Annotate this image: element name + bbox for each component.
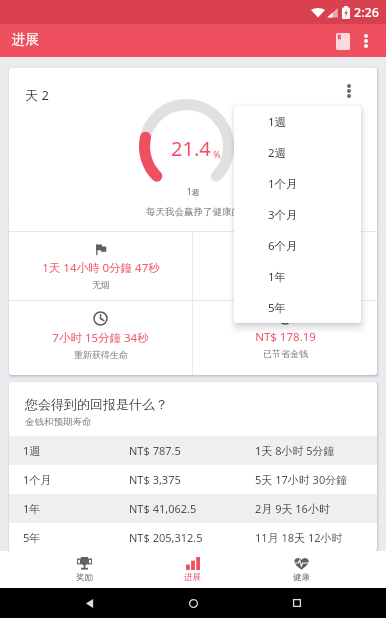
button[interactable]: Recents (282, 588, 312, 618)
staticText: 避免吸烟 (267, 279, 303, 290)
button[interactable]: 健康 (247, 551, 356, 588)
staticText: 1天 8小时 5分鐘 (255, 443, 377, 458)
staticText: 1年 (23, 501, 129, 516)
staticText: 7小时 15分鐘 34秒 (52, 330, 149, 346)
staticText: 每天我会赢挣了健康的 (146, 206, 241, 218)
button[interactable]: Chart options (331, 73, 367, 109)
staticText: 6个月 (268, 238, 298, 254)
button[interactable]: 6个月 (234, 230, 361, 261)
button[interactable]: 5年 (234, 292, 361, 323)
staticText: 2:26 (354, 4, 379, 21)
staticText: 5天 17小时 30分鐘 (255, 472, 377, 487)
staticText: 1个月 (23, 472, 129, 487)
button[interactable]: 16.5 (193, 232, 377, 300)
button[interactable]: 7小时 15分鐘 34秒 (9, 301, 192, 375)
staticText: 1週 (268, 114, 287, 130)
staticText: 已节省金钱 (263, 348, 308, 359)
staticText: 2週 (268, 145, 287, 161)
button[interactable]: 5年 (9, 523, 377, 551)
button[interactable]: NT$ 178.19 (193, 301, 377, 375)
staticText: 金钱和预期寿命 (25, 416, 92, 428)
staticText: NT$ 787.5 (129, 443, 255, 458)
staticText: 1年 (268, 269, 287, 285)
button[interactable]: More options (358, 25, 386, 57)
button[interactable]: 1年 (234, 261, 361, 292)
staticText: 您会得到的回报是什么？ (25, 396, 168, 412)
staticText: 1个月 (268, 176, 298, 192)
button[interactable]: 1週 (234, 106, 361, 137)
staticText: 1週 (23, 443, 129, 458)
staticText: 3个月 (268, 207, 298, 223)
staticText: NT$ 205,312.5 (129, 530, 255, 545)
button[interactable]: Back (74, 588, 104, 618)
staticText: 5年 (268, 300, 287, 316)
staticText: 21.4 (171, 135, 211, 162)
button[interactable]: 奖励 (30, 551, 138, 588)
staticText: 2月 9天 16小时 (255, 501, 377, 516)
button[interactable]: 1週 (9, 436, 377, 465)
staticText: 重新获得生命 (74, 349, 128, 360)
button[interactable]: 1天 14小時 0分鐘 47秒 (9, 232, 192, 300)
staticText: NT$ 178.19 (255, 329, 316, 345)
button[interactable]: Home (178, 588, 208, 618)
button[interactable]: 3个月 (234, 199, 361, 230)
staticText: NT$ 3,375 (129, 472, 255, 487)
staticText: 天 2 (25, 86, 49, 104)
button[interactable]: 1年 (9, 494, 377, 523)
staticText: 健康 (293, 572, 310, 583)
staticText: 无烟 (92, 279, 110, 290)
button[interactable]: 1个月 (234, 168, 361, 199)
button[interactable]: 1个月 (9, 465, 377, 494)
staticText: 1週 (187, 186, 200, 197)
staticText: 11月 18天 12小时 (255, 530, 377, 545)
button[interactable]: Journal (328, 26, 358, 56)
staticText: 1天 14小時 0分鐘 47秒 (42, 260, 160, 276)
staticText: 奖励 (76, 572, 93, 583)
staticText: NT$ 41,062.5 (129, 501, 255, 516)
button[interactable]: 进展 (138, 551, 247, 588)
staticText: % (211, 148, 221, 160)
staticText: 进展 (184, 572, 201, 583)
staticText: 16.5 (274, 260, 297, 276)
staticText: 5年 (23, 530, 129, 545)
button[interactable]: 2週 (234, 137, 361, 168)
staticText: 进展 (12, 31, 39, 48)
